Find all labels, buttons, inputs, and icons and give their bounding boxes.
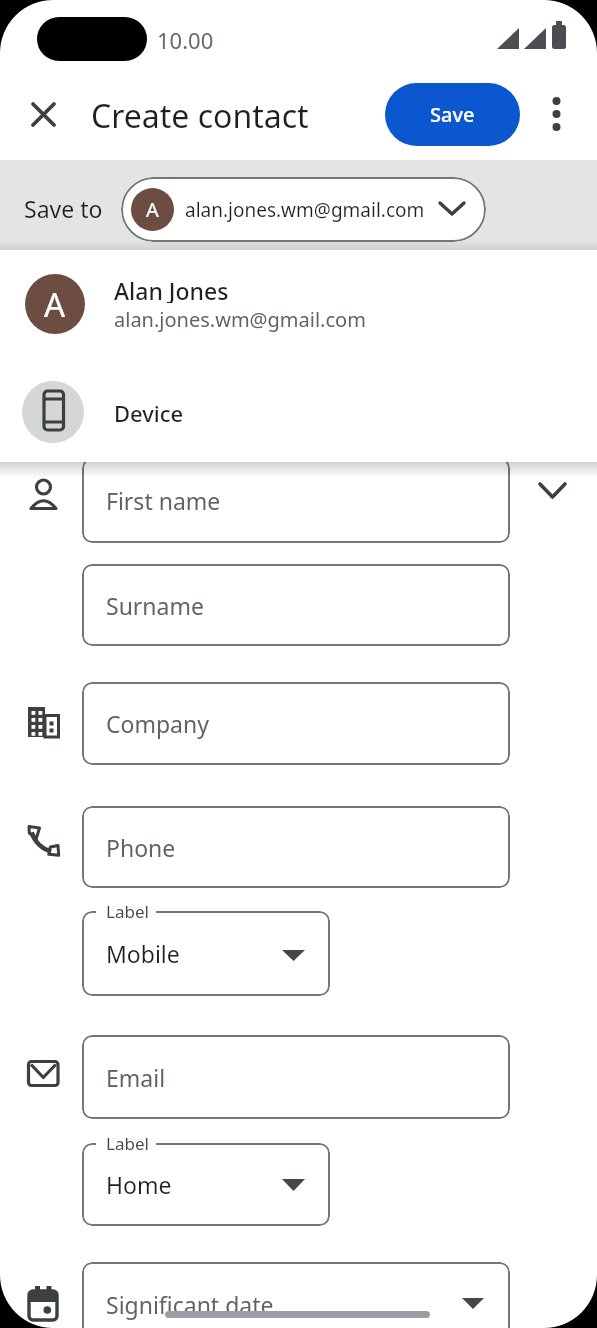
staticText: Surname	[106, 590, 204, 621]
staticText: Create contact	[91, 94, 309, 138]
button[interactable]: Surname	[82, 564, 510, 646]
button[interactable]	[534, 90, 580, 136]
button[interactable]: Company	[82, 682, 510, 765]
staticText: Home	[106, 1169, 172, 1200]
button[interactable]	[527, 466, 579, 516]
staticText: Device	[114, 398, 184, 426]
staticText: Alan Jones	[114, 275, 229, 303]
staticText: 10.00	[157, 25, 214, 55]
button[interactable]: First name	[82, 458, 510, 543]
button[interactable]: Home	[82, 1143, 330, 1226]
staticText: alan.jones.wm@gmail.com	[185, 197, 425, 223]
staticText: A	[146, 196, 159, 223]
button[interactable]: Phone	[82, 806, 510, 888]
button[interactable]: Significant date	[82, 1262, 510, 1328]
staticText: Label	[106, 900, 149, 922]
staticText: Phone	[106, 832, 176, 863]
staticText: alan.jones.wm@gmail.com	[114, 306, 366, 332]
button[interactable]	[0, 370, 597, 455]
staticText: Significant date	[106, 1289, 274, 1320]
button[interactable]: Email	[82, 1035, 510, 1119]
staticText: Mobile	[106, 938, 180, 969]
staticText: First name	[106, 485, 221, 516]
staticText: A	[44, 282, 66, 327]
button[interactable]: A	[121, 177, 486, 242]
staticText: Save	[430, 101, 475, 128]
button[interactable]: Mobile	[82, 911, 330, 996]
staticText: Label	[106, 1132, 149, 1154]
button[interactable]	[0, 258, 597, 353]
button[interactable]	[20, 90, 70, 140]
staticText: Company	[106, 708, 209, 739]
button[interactable]: Save	[385, 83, 520, 146]
staticText: Save to	[24, 193, 103, 224]
staticText: Email	[106, 1062, 166, 1093]
